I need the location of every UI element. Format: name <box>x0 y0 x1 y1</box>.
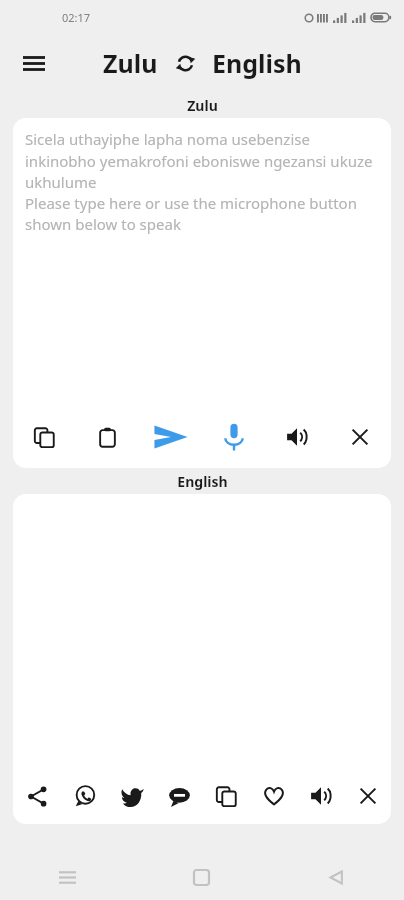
button[interactable]: Zulu <box>99 42 162 84</box>
button[interactable]: Recents <box>0 854 134 900</box>
button[interactable]: Home <box>134 854 269 900</box>
button[interactable]: Speak <box>202 406 265 468</box>
button[interactable]: Copy <box>13 406 76 468</box>
button[interactable]: English <box>208 42 306 84</box>
button[interactable]: Clear <box>344 768 391 824</box>
button[interactable]: Back <box>269 854 404 900</box>
staticText: English <box>177 472 228 491</box>
button[interactable]: Translate <box>139 406 202 468</box>
button[interactable]: Sicela uthayiphe lapha noma usebenzise i… <box>13 118 391 406</box>
staticText: English <box>212 46 302 80</box>
button[interactable]: Favourite <box>250 768 297 824</box>
button[interactable]: Paste <box>76 406 139 468</box>
button[interactable]: Swap languages <box>169 47 201 79</box>
staticText: Zulu <box>187 96 218 115</box>
staticText: 02:17 <box>62 10 91 25</box>
button[interactable]: Listen <box>265 406 328 468</box>
button[interactable]: Clear <box>328 406 391 468</box>
button[interactable]: SMS <box>156 768 203 824</box>
staticText: Zulu <box>103 46 158 80</box>
button[interactable]: Copy <box>203 768 250 824</box>
button[interactable]: Twitter <box>109 768 156 824</box>
button[interactable]: Menu <box>12 41 56 85</box>
button[interactable]: WhatsApp <box>61 768 109 824</box>
button[interactable]: Share <box>13 768 61 824</box>
button[interactable]: Listen <box>297 768 344 824</box>
staticText: Sicela uthayiphe lapha noma usebenzise i… <box>25 129 381 234</box>
